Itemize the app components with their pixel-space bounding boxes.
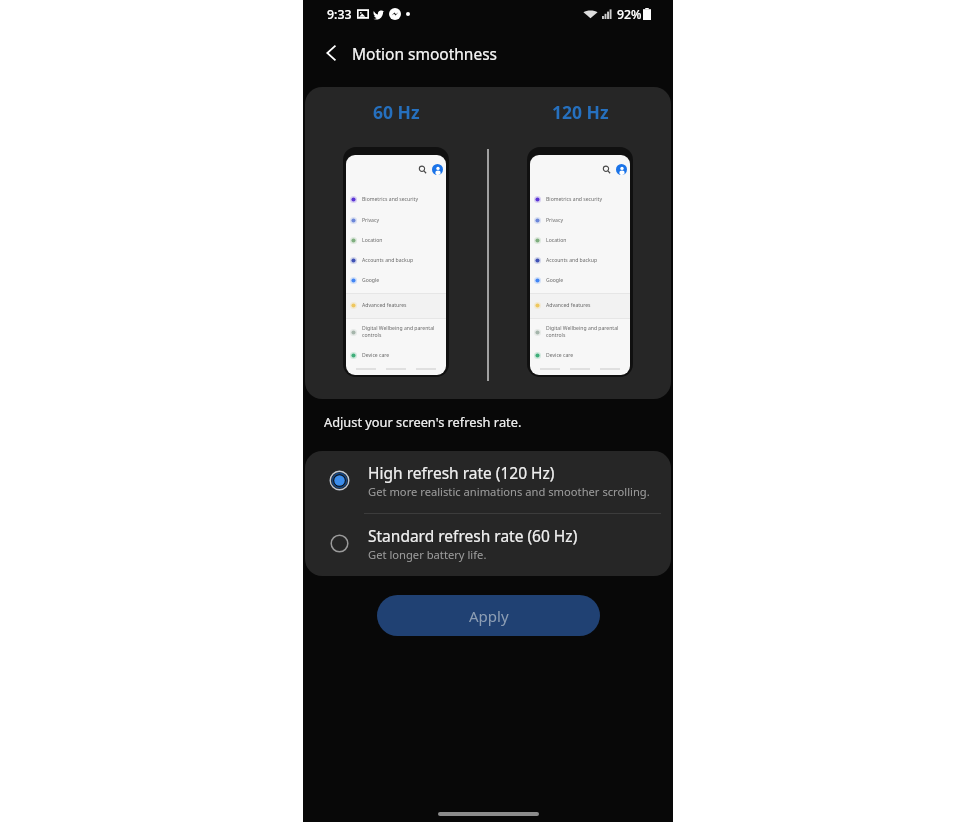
staticText: Accounts and backup xyxy=(362,257,414,264)
staticText: Advanced features xyxy=(362,302,407,309)
staticText: Apply xyxy=(469,606,509,626)
staticText: Location xyxy=(362,237,383,244)
staticText: Location xyxy=(546,237,567,244)
staticText: Standard refresh rate (60 Hz) xyxy=(368,525,578,546)
staticText: Get more realistic animations and smooth… xyxy=(368,484,650,499)
staticText: Google xyxy=(546,277,564,284)
staticText: Device care xyxy=(546,352,574,359)
staticText: Digital Wellbeing and parental controls xyxy=(362,325,435,339)
staticText: Get longer battery life. xyxy=(368,547,487,562)
staticText: 120 Hz xyxy=(552,100,609,124)
button[interactable]: Standard refresh rate (60 Hz) xyxy=(305,514,671,576)
staticText: Motion smoothness xyxy=(352,43,498,64)
staticText: Biometrics and security xyxy=(362,196,419,203)
staticText: 92% xyxy=(617,6,642,23)
staticText: Google xyxy=(362,277,380,284)
button[interactable]: Back xyxy=(315,37,347,69)
staticText: Advanced features xyxy=(546,302,591,309)
staticText: Privacy xyxy=(546,217,563,224)
staticText: Privacy xyxy=(362,217,379,224)
staticText: Biometrics and security xyxy=(546,196,603,203)
staticText: 60 Hz xyxy=(373,100,420,124)
staticText: 9:33 xyxy=(327,6,352,23)
staticText: Adjust your screen's refresh rate. xyxy=(324,413,522,430)
staticText: Device care xyxy=(362,352,390,359)
staticText: Accounts and backup xyxy=(546,257,598,264)
staticText: Digital Wellbeing and parental controls xyxy=(546,325,619,339)
button[interactable]: High refresh rate (120 Hz) xyxy=(305,451,671,513)
staticText: High refresh rate (120 Hz) xyxy=(368,462,555,483)
button[interactable]: Apply xyxy=(377,595,600,636)
